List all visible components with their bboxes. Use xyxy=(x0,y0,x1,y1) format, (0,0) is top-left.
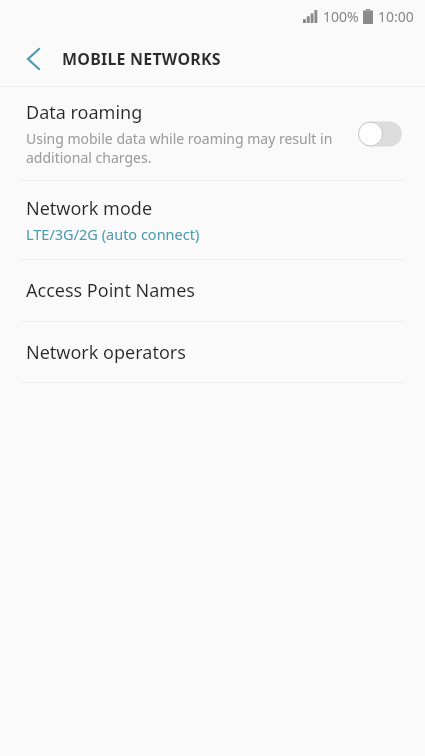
button[interactable]: Network operators xyxy=(0,322,425,382)
staticText: Access Point Names xyxy=(26,278,195,303)
staticText: 100% xyxy=(323,7,359,26)
button[interactable]: Access Point Names xyxy=(0,260,425,321)
button[interactable]: Network mode xyxy=(0,181,425,259)
staticText: Using mobile data while roaming may resu… xyxy=(26,129,348,167)
button[interactable]: Back xyxy=(14,40,52,78)
button[interactable]: Data roaming xyxy=(0,87,425,180)
staticText: Data roaming xyxy=(26,100,143,125)
staticText: Network operators xyxy=(26,340,186,365)
staticText: MOBILE NETWORKS xyxy=(62,48,221,70)
staticText: Network mode xyxy=(26,196,153,221)
button[interactable]: Data roaming toggle xyxy=(358,120,402,148)
staticText: 10:00 xyxy=(378,7,414,26)
staticText: LTE/3G/2G (auto connect) xyxy=(26,224,200,244)
